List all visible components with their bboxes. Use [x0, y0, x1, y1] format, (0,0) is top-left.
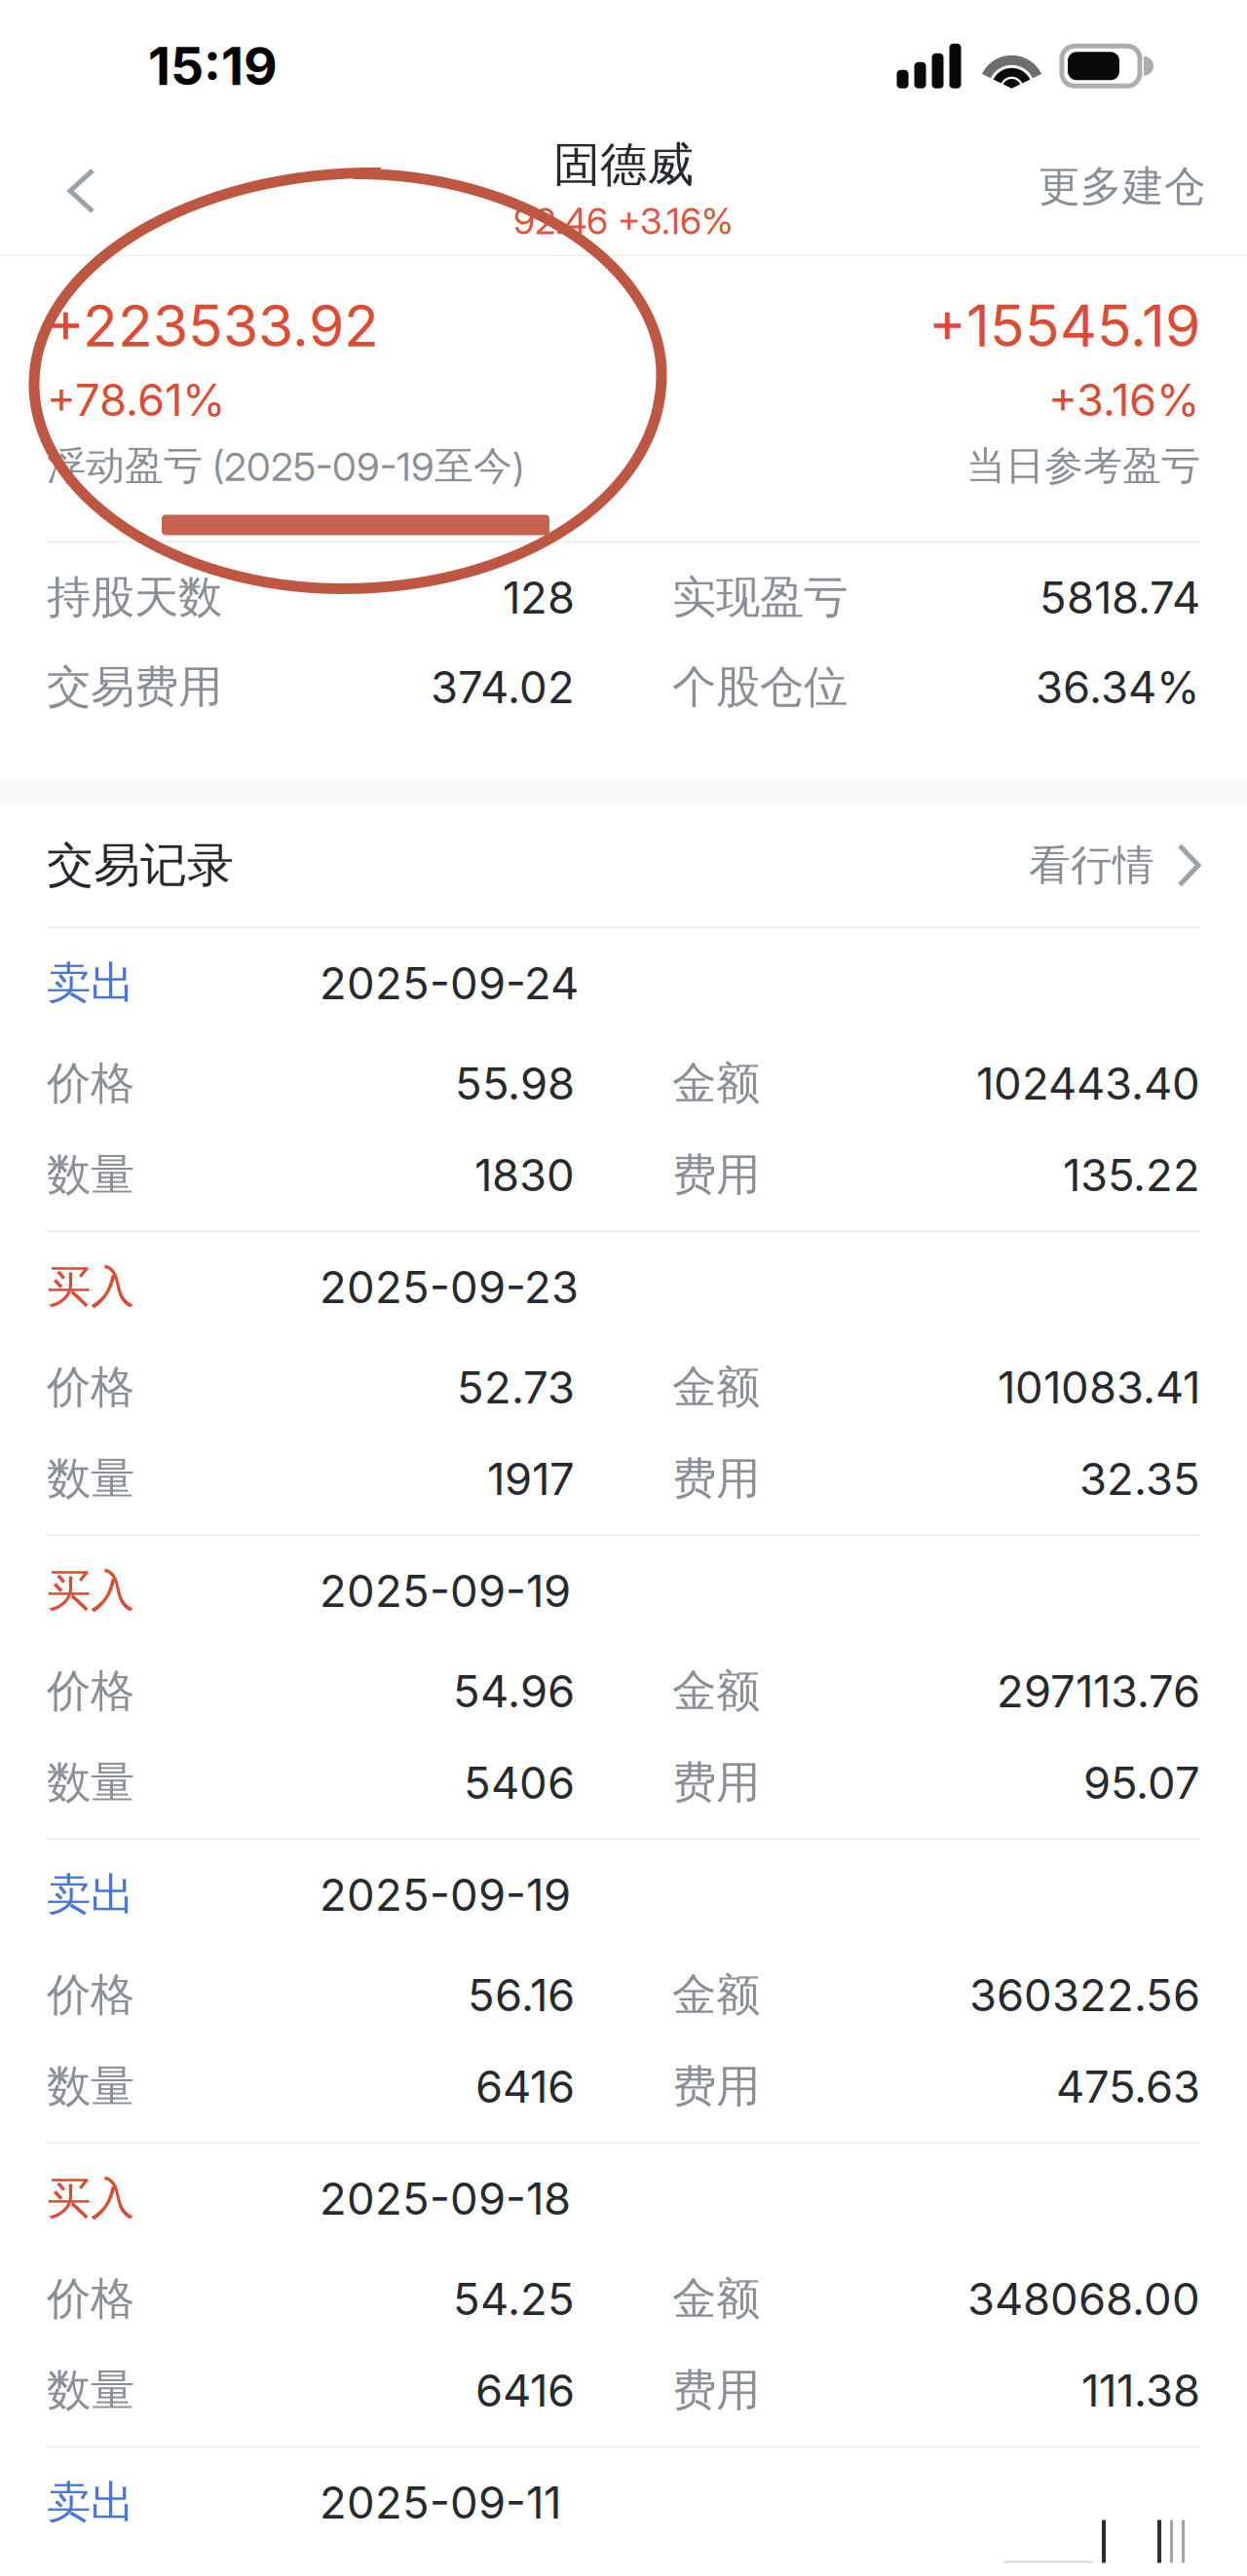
staticText: 297113.76 — [997, 1665, 1200, 1718]
staticText: 价格 — [47, 2271, 134, 2327]
button[interactable]: 卖出 — [0, 1840, 1247, 2142]
staticText: 101083.41 — [998, 1361, 1200, 1414]
staticText: 6416 — [475, 2364, 575, 2417]
staticText: 价格 — [47, 1967, 134, 2023]
staticText: 浮动盈亏 (2025-09-19至今) — [47, 441, 524, 491]
staticText: 个股仓位 — [672, 659, 848, 715]
staticText: 2025-09-24 — [320, 956, 579, 1010]
staticText: 374.02 — [431, 660, 575, 714]
staticText: 135.22 — [1063, 1148, 1200, 1202]
staticText: +15545.19 — [928, 291, 1200, 360]
staticText: 56.16 — [468, 1968, 575, 2022]
staticText: 111.38 — [1081, 2364, 1200, 2417]
staticText: 数量 — [47, 1147, 134, 1203]
staticText: 费用 — [672, 2363, 760, 2418]
staticText: 348068.00 — [967, 2272, 1200, 2326]
staticText: 价格 — [47, 1663, 134, 1719]
staticText: 卖出 — [47, 955, 134, 1011]
staticText: 1830 — [474, 1148, 575, 1202]
staticText: 92.46 +3.16% — [513, 199, 734, 243]
staticText: 固德威 — [553, 135, 694, 194]
staticText: 54.96 — [453, 1665, 575, 1718]
staticText: 1917 — [487, 1452, 575, 1506]
staticText: 价格 — [47, 1359, 134, 1415]
staticText: +3.16% — [1048, 373, 1200, 427]
staticText: 数量 — [47, 2363, 134, 2418]
staticText: 交易记录 — [47, 836, 234, 895]
staticText: 2025-09-19 — [320, 1868, 571, 1922]
staticText: 金额 — [672, 1056, 760, 1111]
staticText: 买入 — [47, 1563, 134, 1619]
staticText: 买入 — [47, 1259, 134, 1315]
staticText: 金额 — [672, 2271, 760, 2327]
staticText: 金额 — [672, 1967, 760, 2023]
staticText: 15:19 — [148, 35, 278, 97]
staticText: 128 — [503, 571, 575, 624]
button[interactable]: 买入 — [0, 2144, 1247, 2446]
staticText: 金额 — [672, 1663, 760, 1719]
staticText: 数量 — [47, 1755, 134, 1811]
button[interactable]: 卖出 — [0, 2448, 1247, 2576]
staticText: 费用 — [672, 2059, 760, 2114]
staticText: 6416 — [475, 2060, 575, 2113]
staticText: 5818.74 — [1039, 571, 1200, 624]
staticText: 54.25 — [453, 2272, 575, 2326]
staticText: 475.63 — [1056, 2060, 1200, 2113]
staticText: +78.61% — [47, 373, 226, 427]
staticText: 2025-09-18 — [320, 2172, 571, 2225]
button[interactable]: 卖出 — [0, 929, 1247, 1231]
staticText: 持股天数 — [47, 570, 222, 625]
staticText: 52.73 — [457, 1361, 575, 1414]
staticText: 2025-09-19 — [320, 1564, 571, 1618]
staticText: 数量 — [47, 1451, 134, 1507]
button[interactable]: 看行情 — [1029, 804, 1247, 927]
staticText: 看行情 — [1029, 839, 1154, 892]
staticText: 当日参考盈亏 — [966, 441, 1200, 491]
button[interactable]: 买入 — [0, 1536, 1247, 1838]
staticText: 卖出 — [47, 1867, 134, 1923]
staticText: 32.35 — [1079, 1452, 1200, 1506]
staticText: 卖出 — [47, 2475, 134, 2530]
staticText: 买入 — [47, 2171, 134, 2226]
staticText: 费用 — [672, 1147, 760, 1203]
staticText: 360322.56 — [969, 1968, 1200, 2022]
button[interactable]: 买入 — [0, 1232, 1247, 1534]
staticText: 费用 — [672, 1451, 760, 1507]
button[interactable]: 更多建仓 — [1013, 118, 1247, 255]
staticText: 102443.40 — [976, 1057, 1200, 1110]
staticText: 2025-09-11 — [320, 2476, 561, 2529]
staticText: 36.34% — [1036, 660, 1200, 714]
staticText: 实现盈亏 — [672, 570, 848, 625]
staticText: 费用 — [672, 1755, 760, 1811]
staticText: 价格 — [47, 1056, 134, 1111]
staticText: 更多建仓 — [1039, 160, 1206, 213]
staticText: 95.07 — [1083, 1756, 1200, 1810]
button[interactable]: Back — [0, 118, 129, 255]
staticText: 金额 — [672, 1359, 760, 1415]
staticText: 5406 — [464, 1756, 575, 1810]
staticText: +223533.92 — [47, 291, 379, 360]
staticText: 数量 — [47, 2059, 134, 2114]
staticText: 交易费用 — [47, 659, 222, 715]
staticText: 55.98 — [455, 1057, 575, 1110]
staticText: 2025-09-23 — [320, 1260, 579, 1314]
